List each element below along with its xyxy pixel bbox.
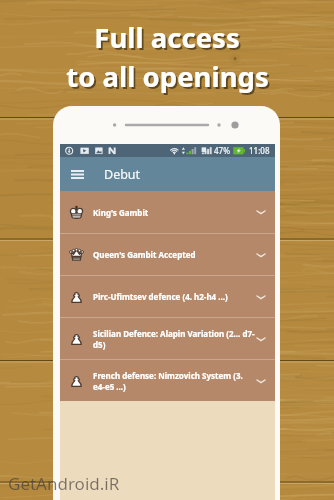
button[interactable]: Pirc-Ufimtsev defence (4. h2-h4 ...) [60, 276, 275, 317]
button[interactable]: French defense: Nimzovich System (3. e4-… [60, 360, 275, 401]
staticText: Queen's Gambit Accepted [93, 249, 255, 260]
staticText: 11:08 [249, 145, 270, 156]
staticText: Pirc-Ufimtsev defence (4. h2-h4 ...) [93, 291, 255, 302]
staticText: to all openings [68, 60, 271, 97]
staticText: Sicilian Defence: Alapin Variation (2...… [93, 328, 255, 350]
button[interactable]: King's Gambit [60, 191, 275, 233]
staticText: Full access [96, 21, 242, 58]
staticText: Debut [104, 166, 141, 183]
button[interactable]: Queen's Gambit Accepted [60, 234, 275, 275]
staticText: to all openings [66, 58, 269, 95]
button[interactable]: Open navigation menu [65, 162, 89, 186]
staticText: 47% [214, 145, 230, 156]
staticText: French defense: Nimzovich System (3. e4-… [93, 370, 255, 392]
staticText: GetAndroid.iR [8, 472, 120, 495]
staticText: King's Gambit [93, 207, 255, 218]
staticText: Full access [94, 19, 240, 56]
button[interactable]: Sicilian Defence: Alapin Variation (2...… [60, 318, 275, 359]
